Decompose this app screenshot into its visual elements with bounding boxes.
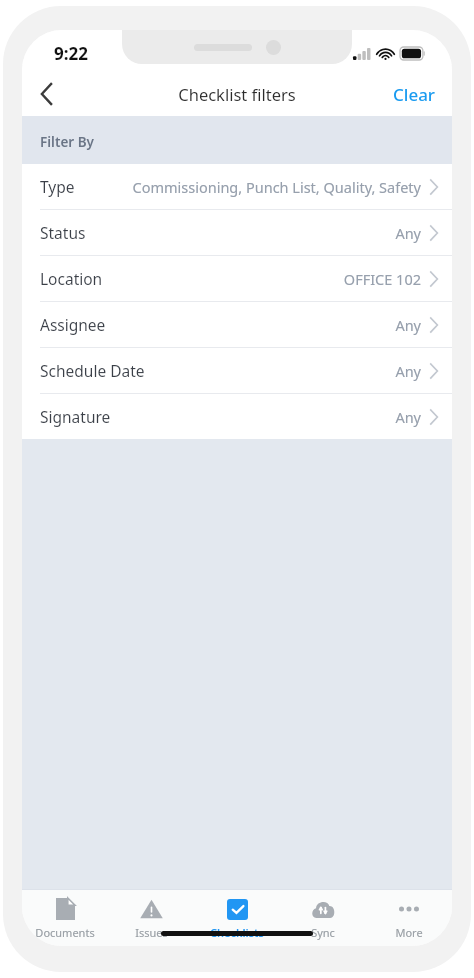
staticText: 9:22: [54, 42, 88, 65]
staticText: Filter By: [40, 133, 94, 151]
staticText: Any: [395, 407, 421, 427]
staticText: Signature: [40, 406, 111, 427]
staticText: Issues: [135, 925, 168, 940]
staticText: Any: [395, 223, 421, 243]
staticText: Any: [395, 315, 421, 335]
button[interactable]: Schedule Date: [22, 348, 452, 393]
button[interactable]: Location: [22, 256, 452, 301]
staticText: More: [395, 925, 423, 940]
staticText: OFFICE 102: [343, 269, 421, 289]
staticText: Type: [40, 176, 75, 197]
staticText: Clear: [393, 83, 436, 106]
staticText: Assignee: [40, 314, 106, 335]
staticText: Commissioning, Punch List, Quality, Safe…: [132, 177, 421, 197]
button[interactable]: Assignee: [22, 302, 452, 347]
staticText: Checklist filters: [178, 83, 296, 105]
button[interactable]: Type: [22, 164, 452, 209]
staticText: Location: [40, 268, 103, 289]
button[interactable]: Checklists: [194, 890, 280, 946]
button[interactable]: Sync: [280, 890, 366, 946]
staticText: Any: [395, 361, 421, 381]
button[interactable]: Back: [22, 72, 70, 116]
staticText: Sync: [311, 925, 335, 940]
staticText: Status: [40, 222, 86, 243]
button[interactable]: Signature: [22, 394, 452, 439]
button[interactable]: Clear: [377, 75, 452, 114]
button[interactable]: Status: [22, 210, 452, 255]
button[interactable]: Issues: [108, 890, 194, 946]
staticText: Schedule Date: [40, 360, 145, 381]
staticText: Documents: [35, 925, 95, 940]
staticText: Checklists: [210, 925, 264, 940]
button[interactable]: Documents: [22, 890, 108, 946]
button[interactable]: More: [366, 890, 452, 946]
